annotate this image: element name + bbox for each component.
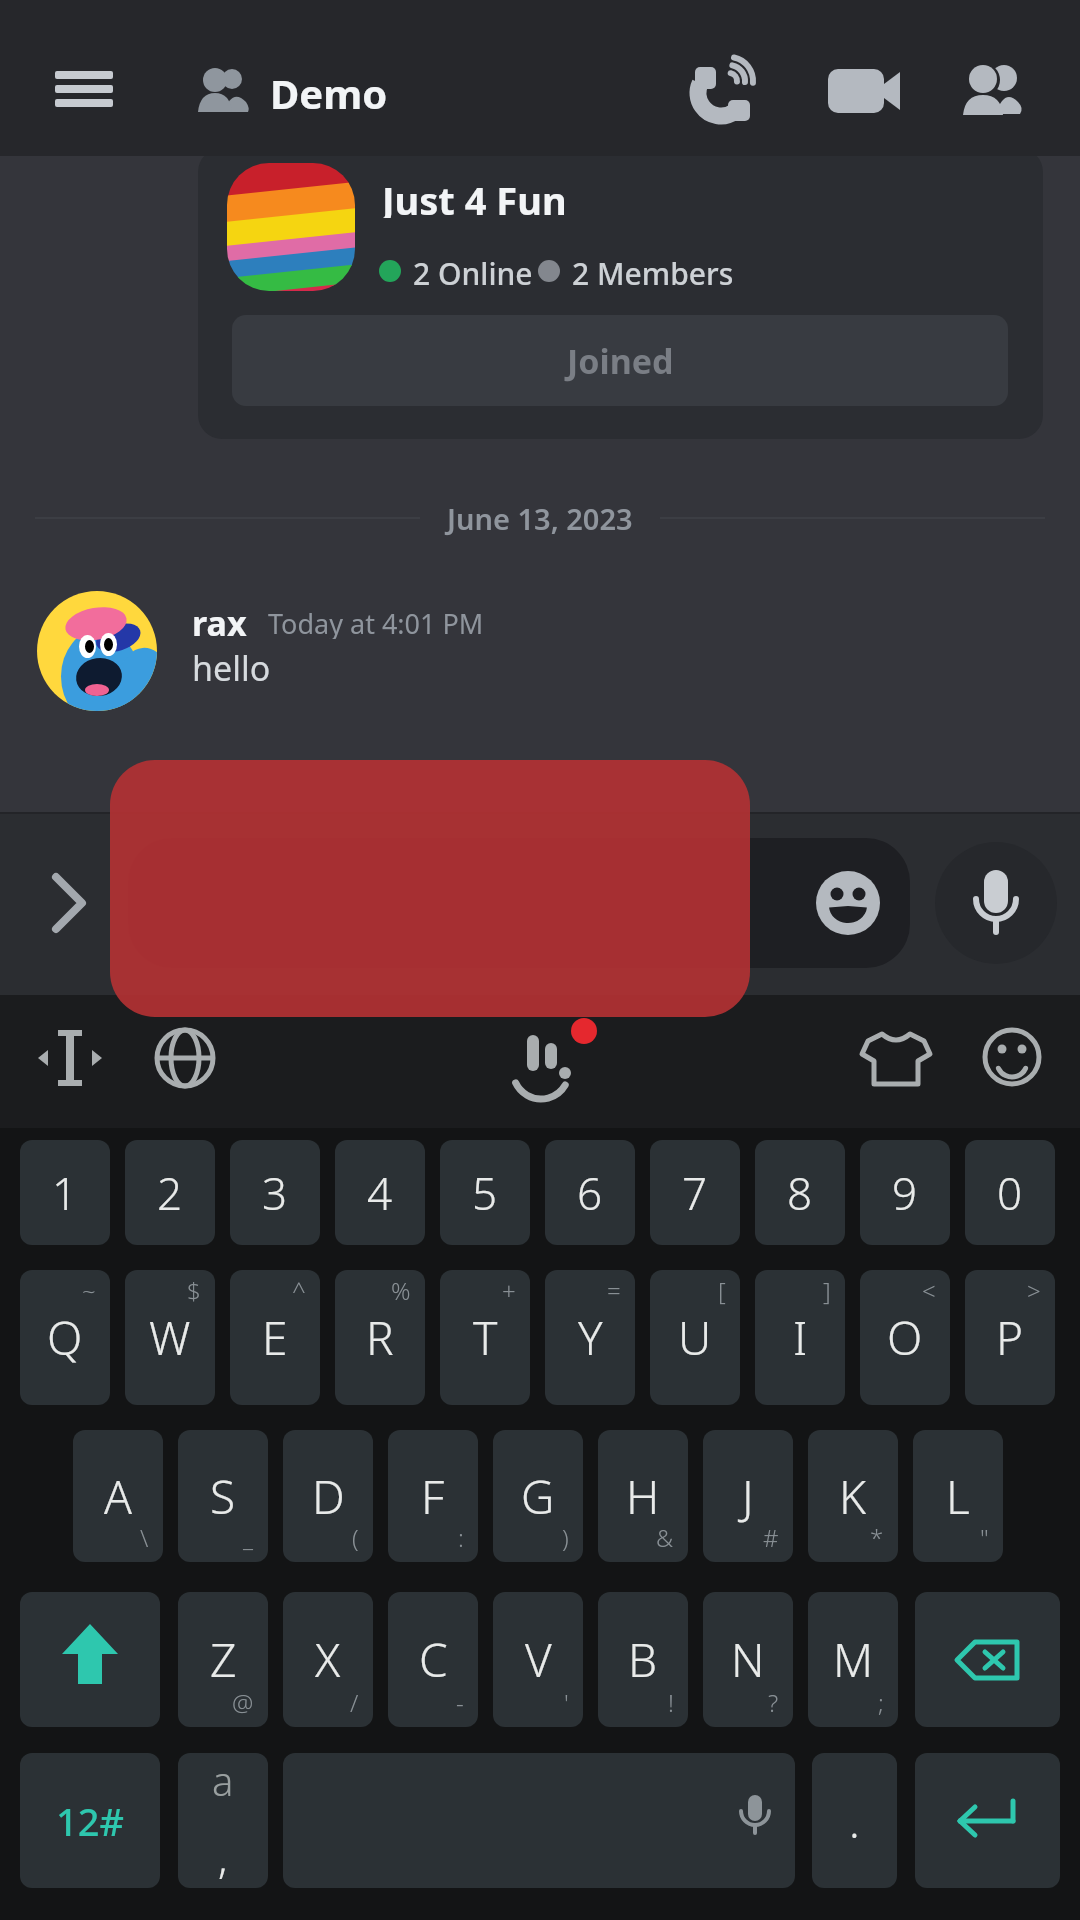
staticText: G xyxy=(521,1465,555,1528)
button[interactable] xyxy=(128,838,910,968)
staticText: V xyxy=(525,1628,552,1691)
staticText: Z xyxy=(210,1628,237,1691)
staticText: 4 xyxy=(367,1163,393,1223)
button[interactable]: N xyxy=(703,1592,793,1727)
staticText: 1 xyxy=(52,1163,78,1223)
staticText: Today at 4:01 PM xyxy=(268,605,484,639)
button[interactable] xyxy=(860,1028,934,1090)
button[interactable] xyxy=(40,870,100,934)
button[interactable]: C xyxy=(388,1592,478,1727)
button[interactable]: G xyxy=(493,1430,583,1562)
button[interactable]: E xyxy=(230,1270,320,1405)
button[interactable]: 9 xyxy=(860,1140,950,1245)
button[interactable]: 2 xyxy=(125,1140,215,1245)
button[interactable]: T xyxy=(440,1270,530,1405)
staticText: ! xyxy=(668,1686,674,1719)
button[interactable]: Joined xyxy=(232,315,1008,406)
staticText: E xyxy=(262,1306,288,1369)
button[interactable] xyxy=(45,59,123,119)
button[interactable]: K xyxy=(808,1430,898,1562)
button[interactable]: H xyxy=(598,1430,688,1562)
button[interactable]: S xyxy=(178,1430,268,1562)
button[interactable] xyxy=(816,871,880,935)
button[interactable]: D xyxy=(283,1430,373,1562)
button[interactable]: B xyxy=(598,1592,688,1727)
button[interactable]: M xyxy=(808,1592,898,1727)
button[interactable] xyxy=(283,1753,795,1888)
staticText: P xyxy=(996,1306,1024,1369)
button[interactable]: R xyxy=(335,1270,425,1405)
staticText: _ xyxy=(243,1521,254,1554)
button[interactable]: A xyxy=(73,1430,163,1562)
button[interactable] xyxy=(688,54,760,126)
button[interactable]: 7 xyxy=(650,1140,740,1245)
staticText: ' xyxy=(564,1686,569,1719)
button[interactable]: 3 xyxy=(230,1140,320,1245)
staticText: 2 Online xyxy=(413,253,533,291)
button[interactable] xyxy=(935,842,1057,964)
staticText: > xyxy=(1027,1274,1041,1307)
staticText: ] xyxy=(823,1274,831,1307)
button[interactable] xyxy=(505,1025,585,1105)
button[interactable]: J xyxy=(703,1430,793,1562)
button[interactable]: . xyxy=(812,1753,897,1888)
staticText: " xyxy=(980,1521,989,1554)
button[interactable]: F xyxy=(388,1430,478,1562)
button[interactable]: 12# xyxy=(20,1753,160,1888)
staticText: K xyxy=(839,1465,867,1528)
staticText: [ xyxy=(718,1274,726,1307)
button[interactable]: a xyxy=(178,1753,268,1888)
staticText: < xyxy=(922,1274,936,1307)
button[interactable]: L xyxy=(913,1430,1003,1562)
staticText: M xyxy=(833,1628,874,1691)
button[interactable]: 8 xyxy=(755,1140,845,1245)
button[interactable]: 1 xyxy=(20,1140,110,1245)
staticText: , xyxy=(218,1829,228,1886)
staticText: ? xyxy=(768,1686,779,1719)
staticText: \ xyxy=(140,1521,149,1554)
staticText: 6 xyxy=(577,1163,603,1223)
button[interactable]: 6 xyxy=(545,1140,635,1245)
staticText: + xyxy=(502,1274,516,1307)
staticText: % xyxy=(391,1274,411,1307)
button[interactable] xyxy=(37,591,157,711)
staticText: Demo xyxy=(270,66,388,118)
staticText: L xyxy=(946,1465,970,1528)
button[interactable]: Z xyxy=(178,1592,268,1727)
button[interactable] xyxy=(36,1028,104,1088)
staticText: # xyxy=(763,1521,779,1554)
button[interactable]: 5 xyxy=(440,1140,530,1245)
button[interactable] xyxy=(110,760,750,1017)
staticText: 12# xyxy=(56,1795,125,1847)
button[interactable]: P xyxy=(965,1270,1055,1405)
button[interactable]: U xyxy=(650,1270,740,1405)
staticText: U xyxy=(678,1306,712,1369)
staticText: X xyxy=(315,1628,341,1691)
button[interactable] xyxy=(956,54,1030,124)
staticText: ; xyxy=(878,1686,884,1719)
button[interactable]: Q xyxy=(20,1270,110,1405)
button[interactable] xyxy=(824,60,904,120)
button[interactable]: V xyxy=(493,1592,583,1727)
staticText: Just 4 Fun xyxy=(382,174,567,218)
staticText: W xyxy=(149,1306,191,1369)
button[interactable]: 0 xyxy=(965,1140,1055,1245)
button[interactable]: 4 xyxy=(335,1140,425,1245)
button[interactable]: I xyxy=(755,1270,845,1405)
staticText: Y xyxy=(578,1306,603,1369)
button[interactable] xyxy=(915,1753,1060,1888)
button[interactable] xyxy=(982,1028,1044,1090)
staticText: 3 xyxy=(262,1163,288,1223)
button[interactable]: O xyxy=(860,1270,950,1405)
button[interactable] xyxy=(915,1592,1060,1727)
staticText: 8 xyxy=(787,1163,813,1223)
button[interactable]: X xyxy=(283,1592,373,1727)
staticText: C xyxy=(419,1628,448,1691)
button[interactable]: Y xyxy=(545,1270,635,1405)
staticText: S xyxy=(210,1465,236,1528)
button[interactable]: W xyxy=(125,1270,215,1405)
button[interactable] xyxy=(153,1028,217,1092)
button[interactable] xyxy=(20,1592,160,1727)
staticText: O xyxy=(887,1306,923,1369)
staticText: & xyxy=(656,1521,674,1554)
